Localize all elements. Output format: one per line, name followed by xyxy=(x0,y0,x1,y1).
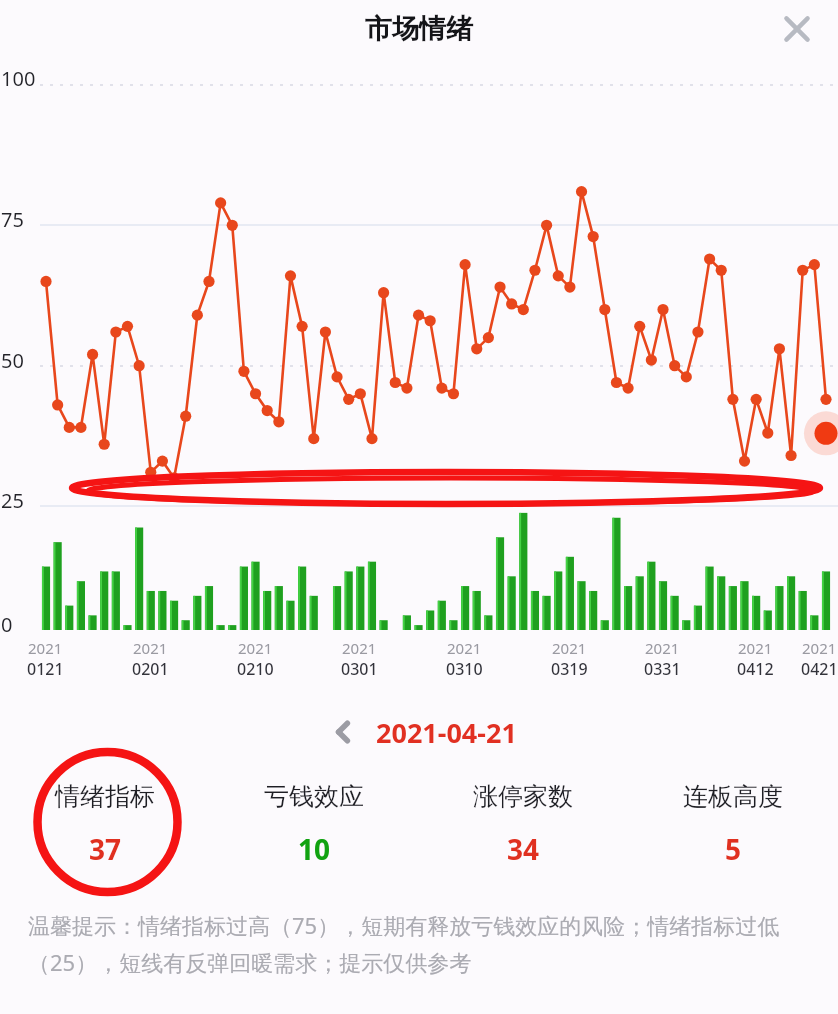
staticText: 50 xyxy=(1,347,24,374)
button[interactable]: 亏钱效应 xyxy=(209,758,418,890)
staticText: 0319 xyxy=(551,658,588,680)
staticText: 2021 xyxy=(552,638,587,658)
button[interactable]: 情绪指标 xyxy=(0,758,209,890)
staticText: 2021 xyxy=(238,638,273,658)
button[interactable]: Close xyxy=(774,6,820,52)
staticText: 37 xyxy=(89,830,122,868)
staticText: 温馨提示：情绪指标过高（75），短期有释放亏钱效应的风险；情绪指标过低（25），… xyxy=(28,910,810,978)
button[interactable]: 2021-04-21 xyxy=(376,714,517,751)
staticText: 0210 xyxy=(237,658,274,680)
staticText: 2021 xyxy=(28,638,63,658)
staticText: 0310 xyxy=(446,658,483,680)
staticText: 100 xyxy=(1,65,36,92)
staticText: 涨停家数 xyxy=(473,781,573,812)
staticText: 市场情绪 xyxy=(365,12,473,46)
staticText: 连板高度 xyxy=(683,781,783,812)
staticText: 2021 xyxy=(133,638,168,658)
staticText: 亏钱效应 xyxy=(264,781,364,812)
staticText: 0121 xyxy=(27,658,64,680)
staticText: 0301 xyxy=(341,658,378,680)
staticText: 情绪指标 xyxy=(55,781,155,812)
staticText: 0201 xyxy=(132,658,169,680)
staticText: 2021 xyxy=(802,638,837,658)
staticText: 10 xyxy=(298,830,331,868)
staticText: 75 xyxy=(1,206,24,233)
staticText: 2021 xyxy=(738,638,773,658)
button[interactable]: 涨停家数 xyxy=(418,758,628,890)
staticText: 2021 xyxy=(342,638,377,658)
staticText: 34 xyxy=(507,830,540,868)
staticText: 0412 xyxy=(737,658,774,680)
button[interactable]: 连板高度 xyxy=(628,758,838,890)
button[interactable]: Previous day xyxy=(322,711,364,753)
staticText: 2021 xyxy=(447,638,482,658)
staticText: 0 xyxy=(1,611,13,638)
staticText: 0331 xyxy=(644,658,681,680)
staticText: 0421 xyxy=(801,658,838,680)
staticText: 2021 xyxy=(645,638,680,658)
staticText: 5 xyxy=(725,830,742,868)
staticText: 25 xyxy=(1,487,24,514)
